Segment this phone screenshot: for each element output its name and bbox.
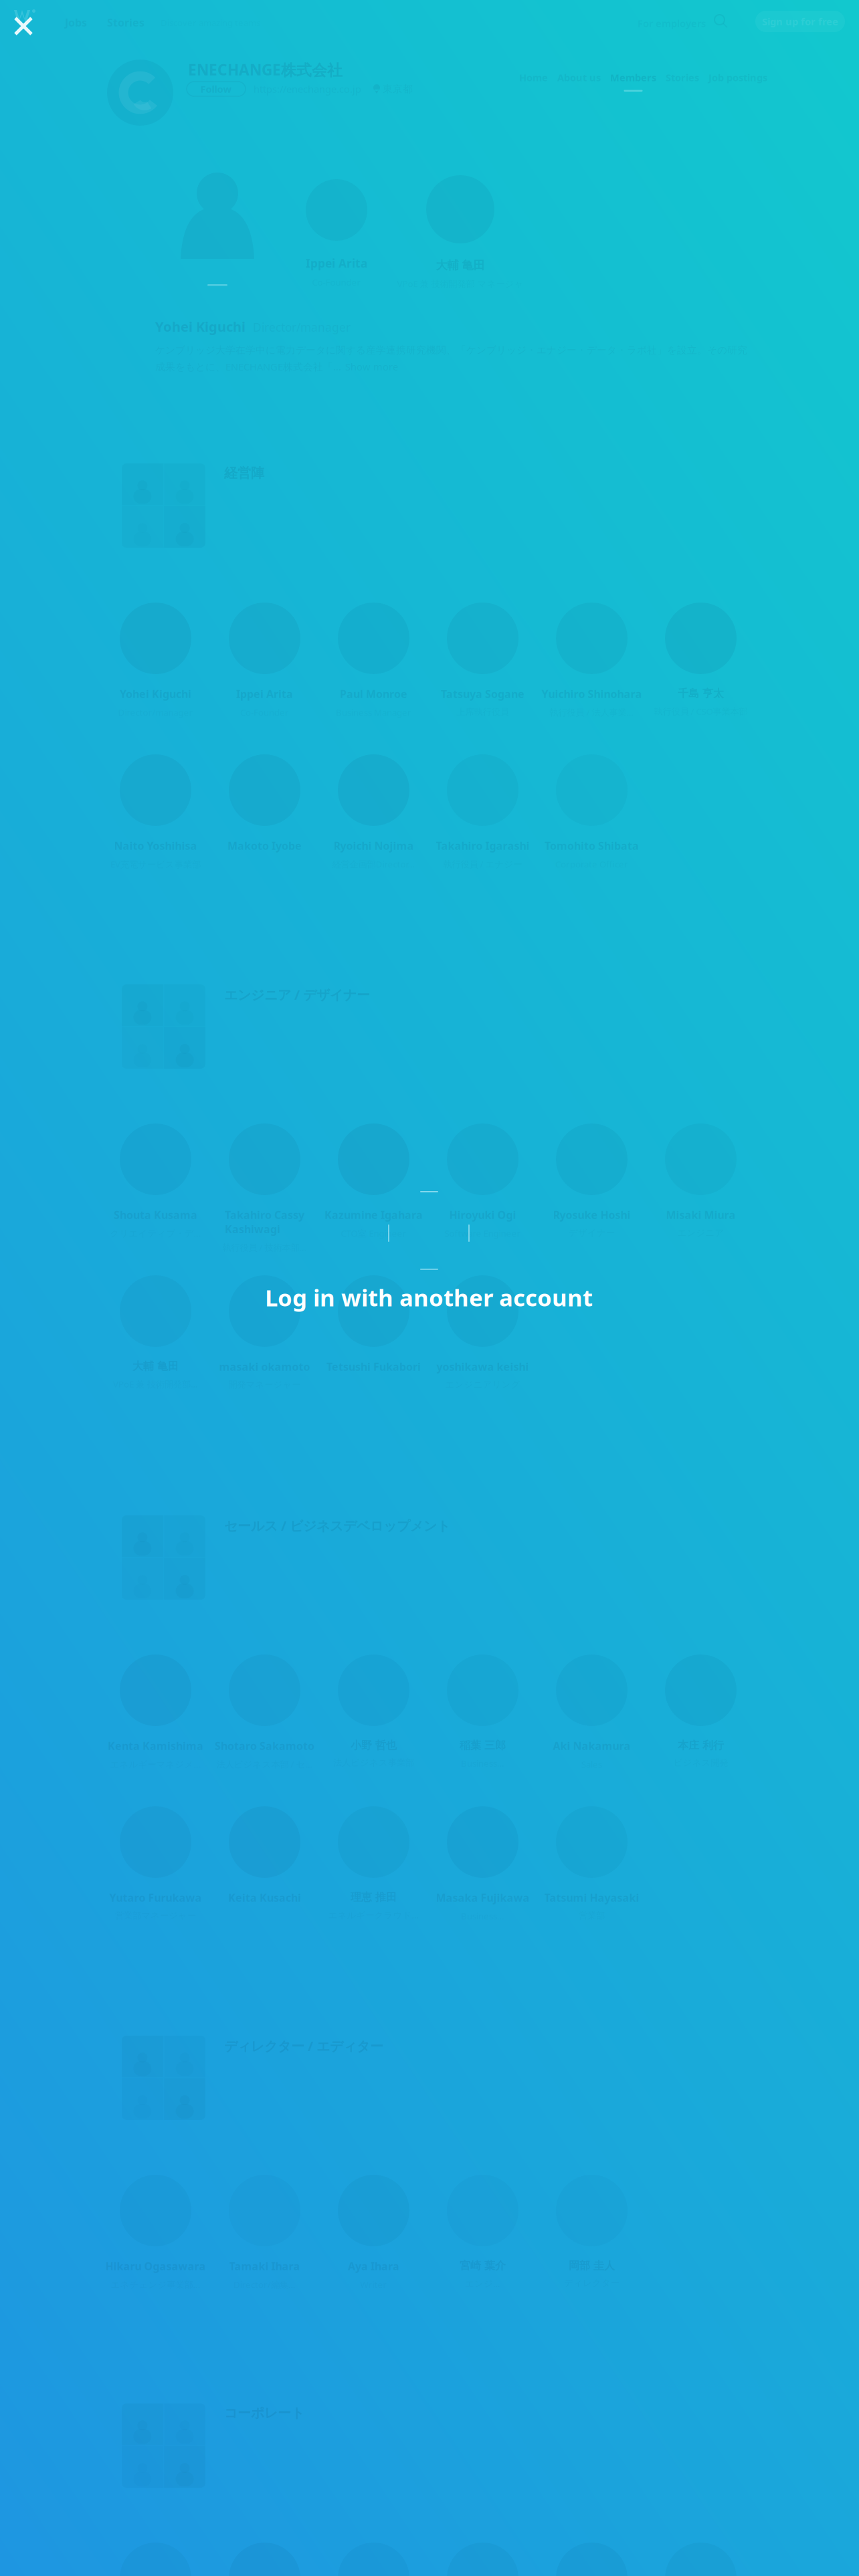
button[interactable]: 理恵 推田: [319, 1806, 428, 1921]
button[interactable]: Hiroyuki Ogi: [428, 1123, 537, 1239]
button[interactable]: Aya Ihara: [319, 2175, 428, 2290]
button[interactable]: Yutaro Furukawa: [101, 1806, 210, 1921]
button[interactable]: Tatsumi Hayasaki: [537, 1806, 646, 1921]
button[interactable]: Shouta Kusama: [101, 1123, 210, 1239]
button[interactable]: Job postings: [704, 71, 772, 92]
staticText: Stories: [666, 71, 699, 84]
button[interactable]: Log in with another account: [248, 1273, 610, 1322]
button[interactable]: Takahiro Igarashi: [428, 754, 537, 870]
button[interactable]: 大輔 亀田: [397, 175, 524, 290]
button[interactable]: Ippei Arita: [273, 179, 400, 288]
button[interactable]: Makoto Iyobe: [210, 754, 319, 870]
staticText: 大輔 亀田: [132, 1360, 179, 1373]
staticText: Tetsushi Fukabori: [326, 1360, 421, 1374]
staticText: Tomohito Shibata: [545, 839, 639, 853]
button[interactable]: Naito Yoshihisa: [101, 754, 210, 870]
staticText: Hikaru Ogasawara: [105, 2259, 206, 2273]
button[interactable]: Kazumine Igahara: [319, 1123, 428, 1239]
staticText: Keita Kusachi: [228, 1891, 301, 1905]
button[interactable]: [646, 2543, 755, 2576]
button[interactable]: Search: [713, 13, 729, 29]
button[interactable]: Tetsushi Fukabori: [319, 1275, 428, 1391]
button[interactable]: Close: [3, 4, 44, 45]
button[interactable]: [428, 2543, 537, 2576]
staticText: Kenta Kamishima: [108, 1739, 203, 1753]
button[interactable]: Ryoichi Nojima: [319, 754, 428, 870]
button[interactable]: 大輔 亀田: [101, 1275, 210, 1390]
button[interactable]: Takahiro Cassy Kashiwagi: [210, 1123, 319, 1253]
staticText: Software Engineer: [445, 1227, 521, 1239]
staticText: Kazumine Igahara: [324, 1208, 423, 1222]
button[interactable]: Stories: [107, 15, 145, 30]
staticText: 岡部 圭人: [569, 2259, 615, 2272]
button[interactable]: Yuichiro Shinohara: [537, 603, 646, 718]
button[interactable]: Follow: [187, 82, 246, 96]
button[interactable]: Yohei Kiguchi: [101, 603, 210, 718]
button[interactable]: [101, 2543, 210, 2576]
staticText: Makoto Iyobe: [227, 839, 302, 853]
button[interactable]: 千島 亨太: [646, 603, 755, 717]
button[interactable]: Aki Nakamura: [537, 1654, 646, 1770]
staticText: Yuichiro Shinohara: [542, 687, 642, 701]
button[interactable]: Yohei Kiguchi: [207, 284, 227, 286]
button[interactable]: Hikaru Ogasawara: [101, 2175, 210, 2290]
staticText: 経営陣: [224, 465, 264, 481]
button[interactable]: masaki okamoto: [210, 1275, 319, 1390]
button[interactable]: Tatsuya Sogane: [428, 603, 537, 717]
staticText: エンジニア / デザイナー: [224, 986, 370, 1004]
button[interactable]: [210, 2543, 319, 2576]
staticText: CTO室 Engineer: [341, 1227, 406, 1239]
staticText: 大輔 亀田: [436, 258, 485, 272]
button[interactable]: Sign up for free: [755, 11, 845, 32]
button[interactable]: Paul Monroe: [319, 603, 428, 718]
staticText: Masaka Fujikawa: [436, 1891, 530, 1905]
button[interactable]: Shotaro Sakamoto: [210, 1654, 319, 1770]
button[interactable]: 本庄 利行: [646, 1654, 755, 1768]
button[interactable]: [537, 2543, 646, 2576]
button[interactable]: Wantedly home: [13, 9, 40, 26]
button[interactable]: Members: [605, 71, 661, 92]
button[interactable]: Jobs: [65, 15, 87, 30]
button[interactable]: Ippei Arita: [210, 603, 319, 718]
button[interactable]: Keita Kusachi: [210, 1806, 319, 1922]
button[interactable]: yoshikawa keishi: [428, 1275, 537, 1390]
button[interactable]: Kenta Kamishima: [101, 1654, 210, 1770]
button[interactable]: Masaka Fujikawa: [428, 1806, 537, 1922]
staticText: ケンブリッジ大学在学中に電力データに関する産学連携研究機関、「ケンブリッジ・エナ…: [155, 344, 747, 356]
staticText: Ippei Arita: [306, 255, 367, 271]
staticText: Tatsumi Hayasaki: [544, 1891, 639, 1905]
button[interactable]: [319, 2543, 428, 2576]
button[interactable]: 稲葉 三郎: [428, 1654, 537, 1769]
button[interactable]: Ryosuke Hoshi: [537, 1123, 646, 1238]
